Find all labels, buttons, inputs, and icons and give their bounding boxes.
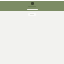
- button[interactable]: Primary action: [28, 13, 36, 16]
- button[interactable]: Logo: [31, 2, 34, 5]
- button[interactable]: Header title: [27, 9, 38, 10]
